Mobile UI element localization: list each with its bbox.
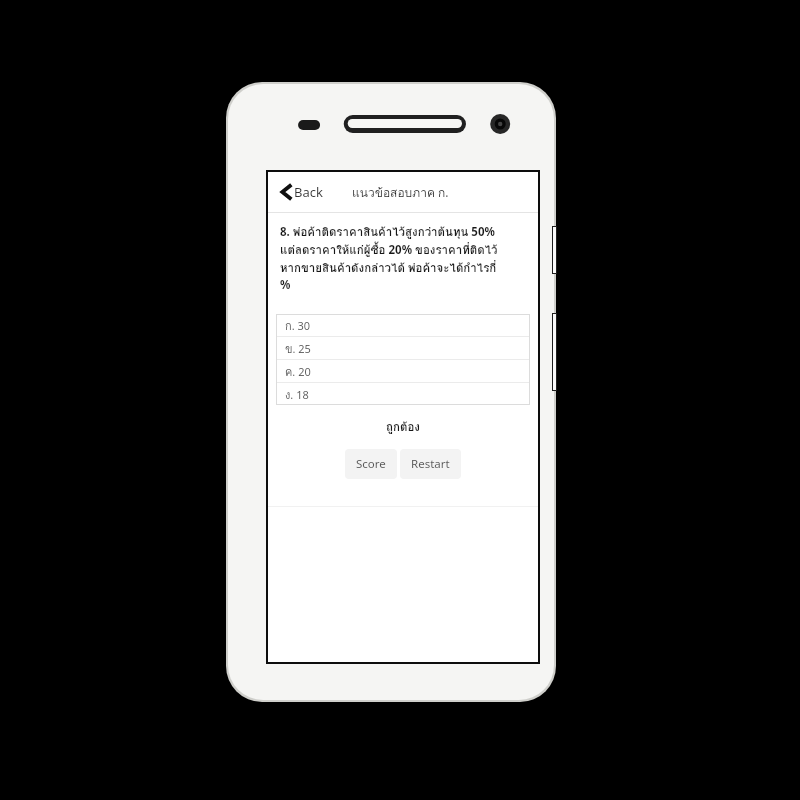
staticText: 8. พ่อค้าติดราคาสินค้าไว้สูงกว่าต้นทุน 5… — [280, 223, 495, 241]
button[interactable]: ง. 18 — [276, 383, 530, 405]
button[interactable]: ค. 20 — [276, 360, 530, 382]
staticText: หากขายสินค้าดังกล่าวได้ พ่อค้าจะได้กำไรก… — [280, 259, 497, 277]
button[interactable]: Back — [274, 178, 327, 206]
button[interactable]: ก. 30 — [276, 314, 530, 336]
staticText: ข. 25 — [285, 340, 311, 357]
staticText: ง. 18 — [285, 386, 309, 403]
button[interactable]: Restart — [400, 449, 461, 479]
staticText: Back — [294, 183, 323, 201]
button[interactable]: ข. 25 — [276, 337, 530, 359]
staticText: ถูกต้อง — [268, 418, 538, 436]
staticText: % — [280, 277, 291, 293]
staticText: ค. 20 — [285, 363, 311, 380]
staticText: แนวข้อสอบภาค ก. — [352, 183, 449, 202]
staticText: แต่ลดราคาให้แก่ผู้ซื้อ 20% ของราคาที่ติด… — [280, 241, 498, 259]
staticText: Score — [356, 456, 386, 472]
staticText: ก. 30 — [285, 317, 311, 334]
staticText: Restart — [411, 456, 450, 472]
other: Back — [278, 184, 294, 200]
button[interactable]: Score — [345, 449, 397, 479]
